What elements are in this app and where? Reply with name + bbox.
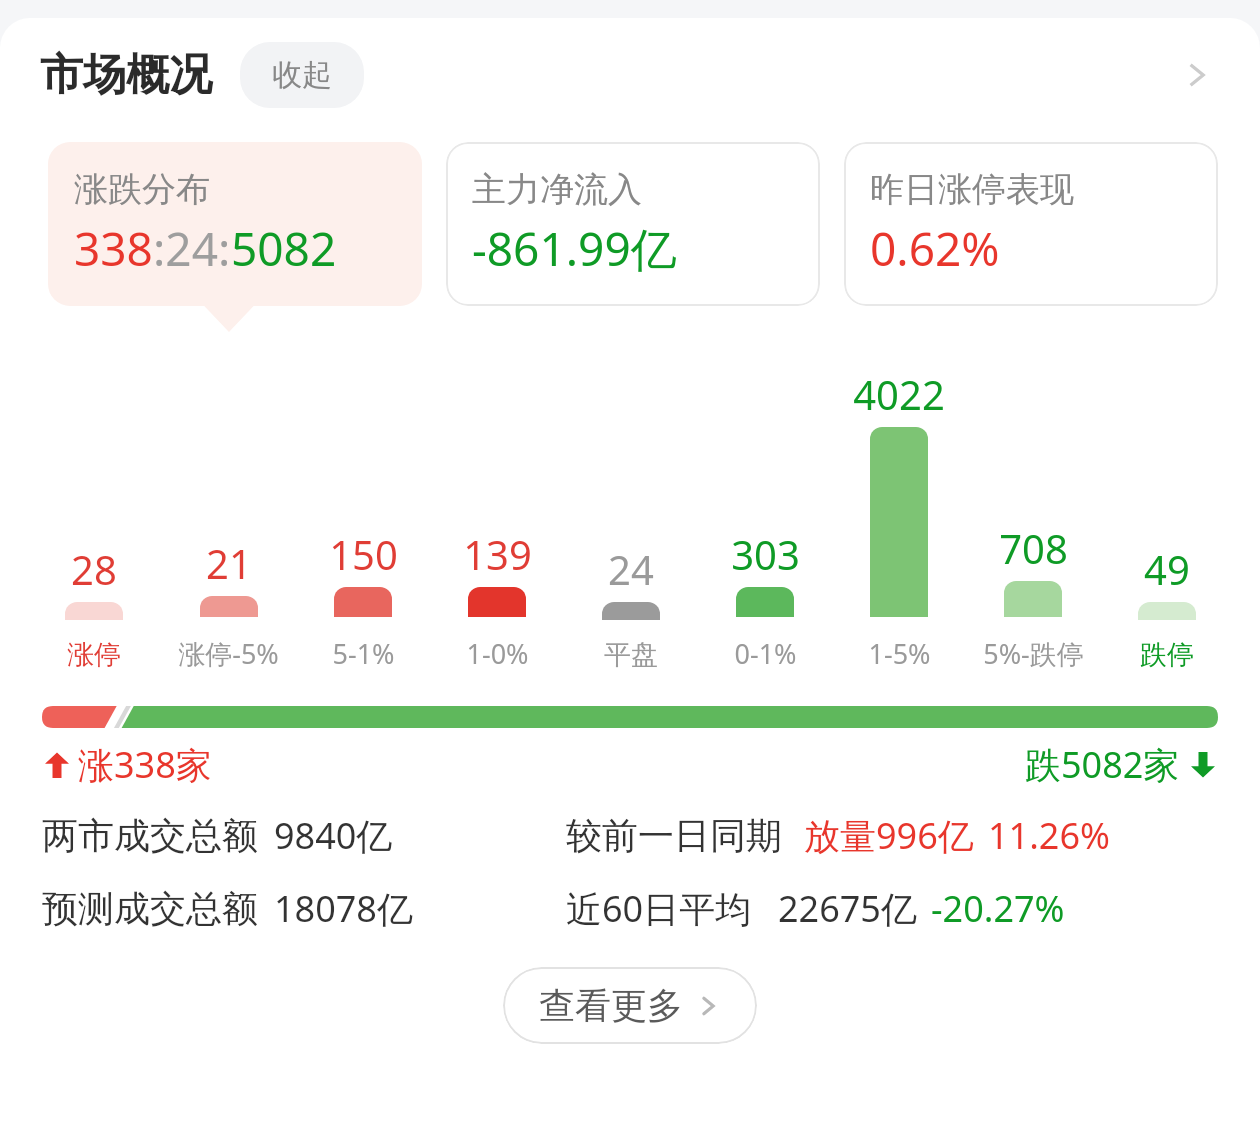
button[interactable]: 主力净流入 (446, 142, 820, 306)
staticText: 涨跌分布 (74, 168, 210, 211)
staticText: 跌5082家 (1025, 740, 1180, 789)
staticText: 150 (329, 527, 398, 581)
staticText: 昨日涨停表现 (870, 168, 1074, 211)
button[interactable]: 展开详情 (1168, 47, 1224, 103)
staticText: 1-0% (466, 635, 529, 672)
staticText: 1-5% (868, 635, 931, 672)
staticText: 303 (731, 527, 800, 581)
staticText: 11.26% (988, 811, 1110, 860)
staticText: 涨338家 (78, 740, 212, 789)
staticText: 28 (71, 542, 117, 596)
staticText: 5%-跌停 (983, 635, 1084, 672)
staticText: 放量996亿 (804, 811, 974, 860)
staticText: -20.27% (931, 884, 1065, 933)
staticText: 预测成交总额 (42, 886, 258, 931)
staticText: 139 (463, 527, 532, 581)
staticText: 收起 (272, 56, 332, 94)
staticText: 市场概况 (40, 48, 212, 102)
staticText: 查看更多 (539, 983, 683, 1028)
staticText: 涨停 (67, 638, 121, 672)
staticText: 跌停 (1140, 638, 1194, 672)
staticText: 49 (1144, 542, 1190, 596)
staticText: -861.99亿 (472, 217, 677, 280)
staticText: 5082 (231, 217, 337, 280)
staticText: 24 (608, 542, 654, 596)
staticText: 涨停-5% (178, 635, 279, 672)
staticText: 21 (206, 536, 252, 590)
button[interactable]: 涨跌分布 (48, 142, 422, 306)
staticText: 18078亿 (274, 884, 413, 933)
staticText: 近60日平均 (566, 884, 752, 933)
staticText: 0.62% (870, 217, 1000, 280)
staticText: 平盘 (604, 638, 658, 672)
staticText: 9840亿 (274, 811, 393, 860)
staticText: 两市成交总额 (42, 813, 258, 858)
button[interactable]: 昨日涨停表现 (844, 142, 1218, 306)
staticText: 22675亿 (778, 884, 917, 933)
staticText: 708 (999, 521, 1068, 575)
button[interactable]: 收起 (240, 42, 364, 108)
staticText: 主力净流入 (472, 168, 642, 211)
staticText: 0-1% (734, 635, 797, 672)
staticText: :24: (153, 217, 231, 280)
staticText: 较前一日同期 (566, 813, 782, 858)
staticText: 338 (74, 217, 153, 280)
button[interactable]: 查看更多 (503, 967, 757, 1044)
staticText: 4022 (853, 367, 945, 421)
staticText: 5-1% (332, 635, 395, 672)
